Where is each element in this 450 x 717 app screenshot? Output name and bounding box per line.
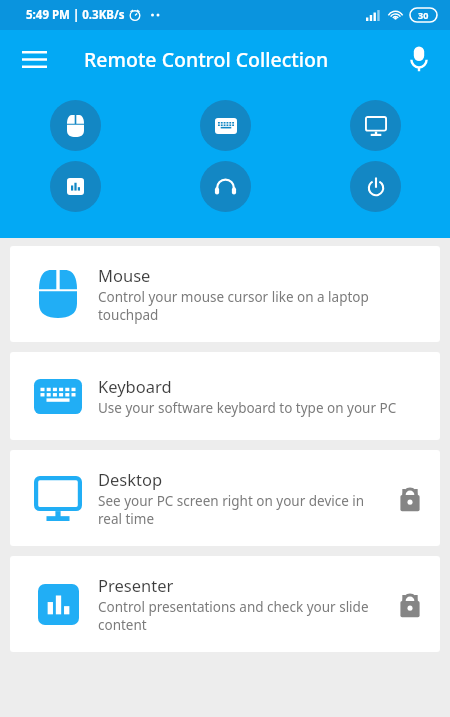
button[interactable]: Mouse remote xyxy=(50,100,101,151)
button[interactable]: Open navigation menu xyxy=(10,35,58,83)
button[interactable]: Keyboard xyxy=(10,352,440,440)
staticText: Control presentations and check your sli… xyxy=(98,598,390,634)
staticText: Use your software keyboard to type on yo… xyxy=(98,399,397,417)
staticText: Presenter xyxy=(98,574,174,596)
button[interactable]: Presenter remote xyxy=(50,161,101,212)
button[interactable]: Media remote xyxy=(200,161,251,212)
staticText: 5:49 PM | 0.3KB/s xyxy=(26,7,125,23)
staticText: Remote Control Collection xyxy=(84,46,329,73)
staticText: Desktop xyxy=(98,468,163,490)
button[interactable]: Voice search xyxy=(395,35,443,83)
staticText: Control your mouse cursor like on a lapt… xyxy=(98,288,422,324)
button[interactable]: Power remote xyxy=(350,161,401,212)
staticText: Mouse xyxy=(98,264,151,286)
button[interactable]: Desktop xyxy=(10,450,440,546)
staticText: Keyboard xyxy=(98,375,172,397)
staticText: 30 xyxy=(418,9,429,21)
button[interactable]: Presenter xyxy=(10,556,440,652)
staticText: See your PC screen right on your device … xyxy=(98,492,390,528)
button[interactable]: Desktop remote xyxy=(350,100,401,151)
button[interactable]: Mouse xyxy=(10,246,440,342)
button[interactable]: Keyboard remote xyxy=(200,100,251,151)
